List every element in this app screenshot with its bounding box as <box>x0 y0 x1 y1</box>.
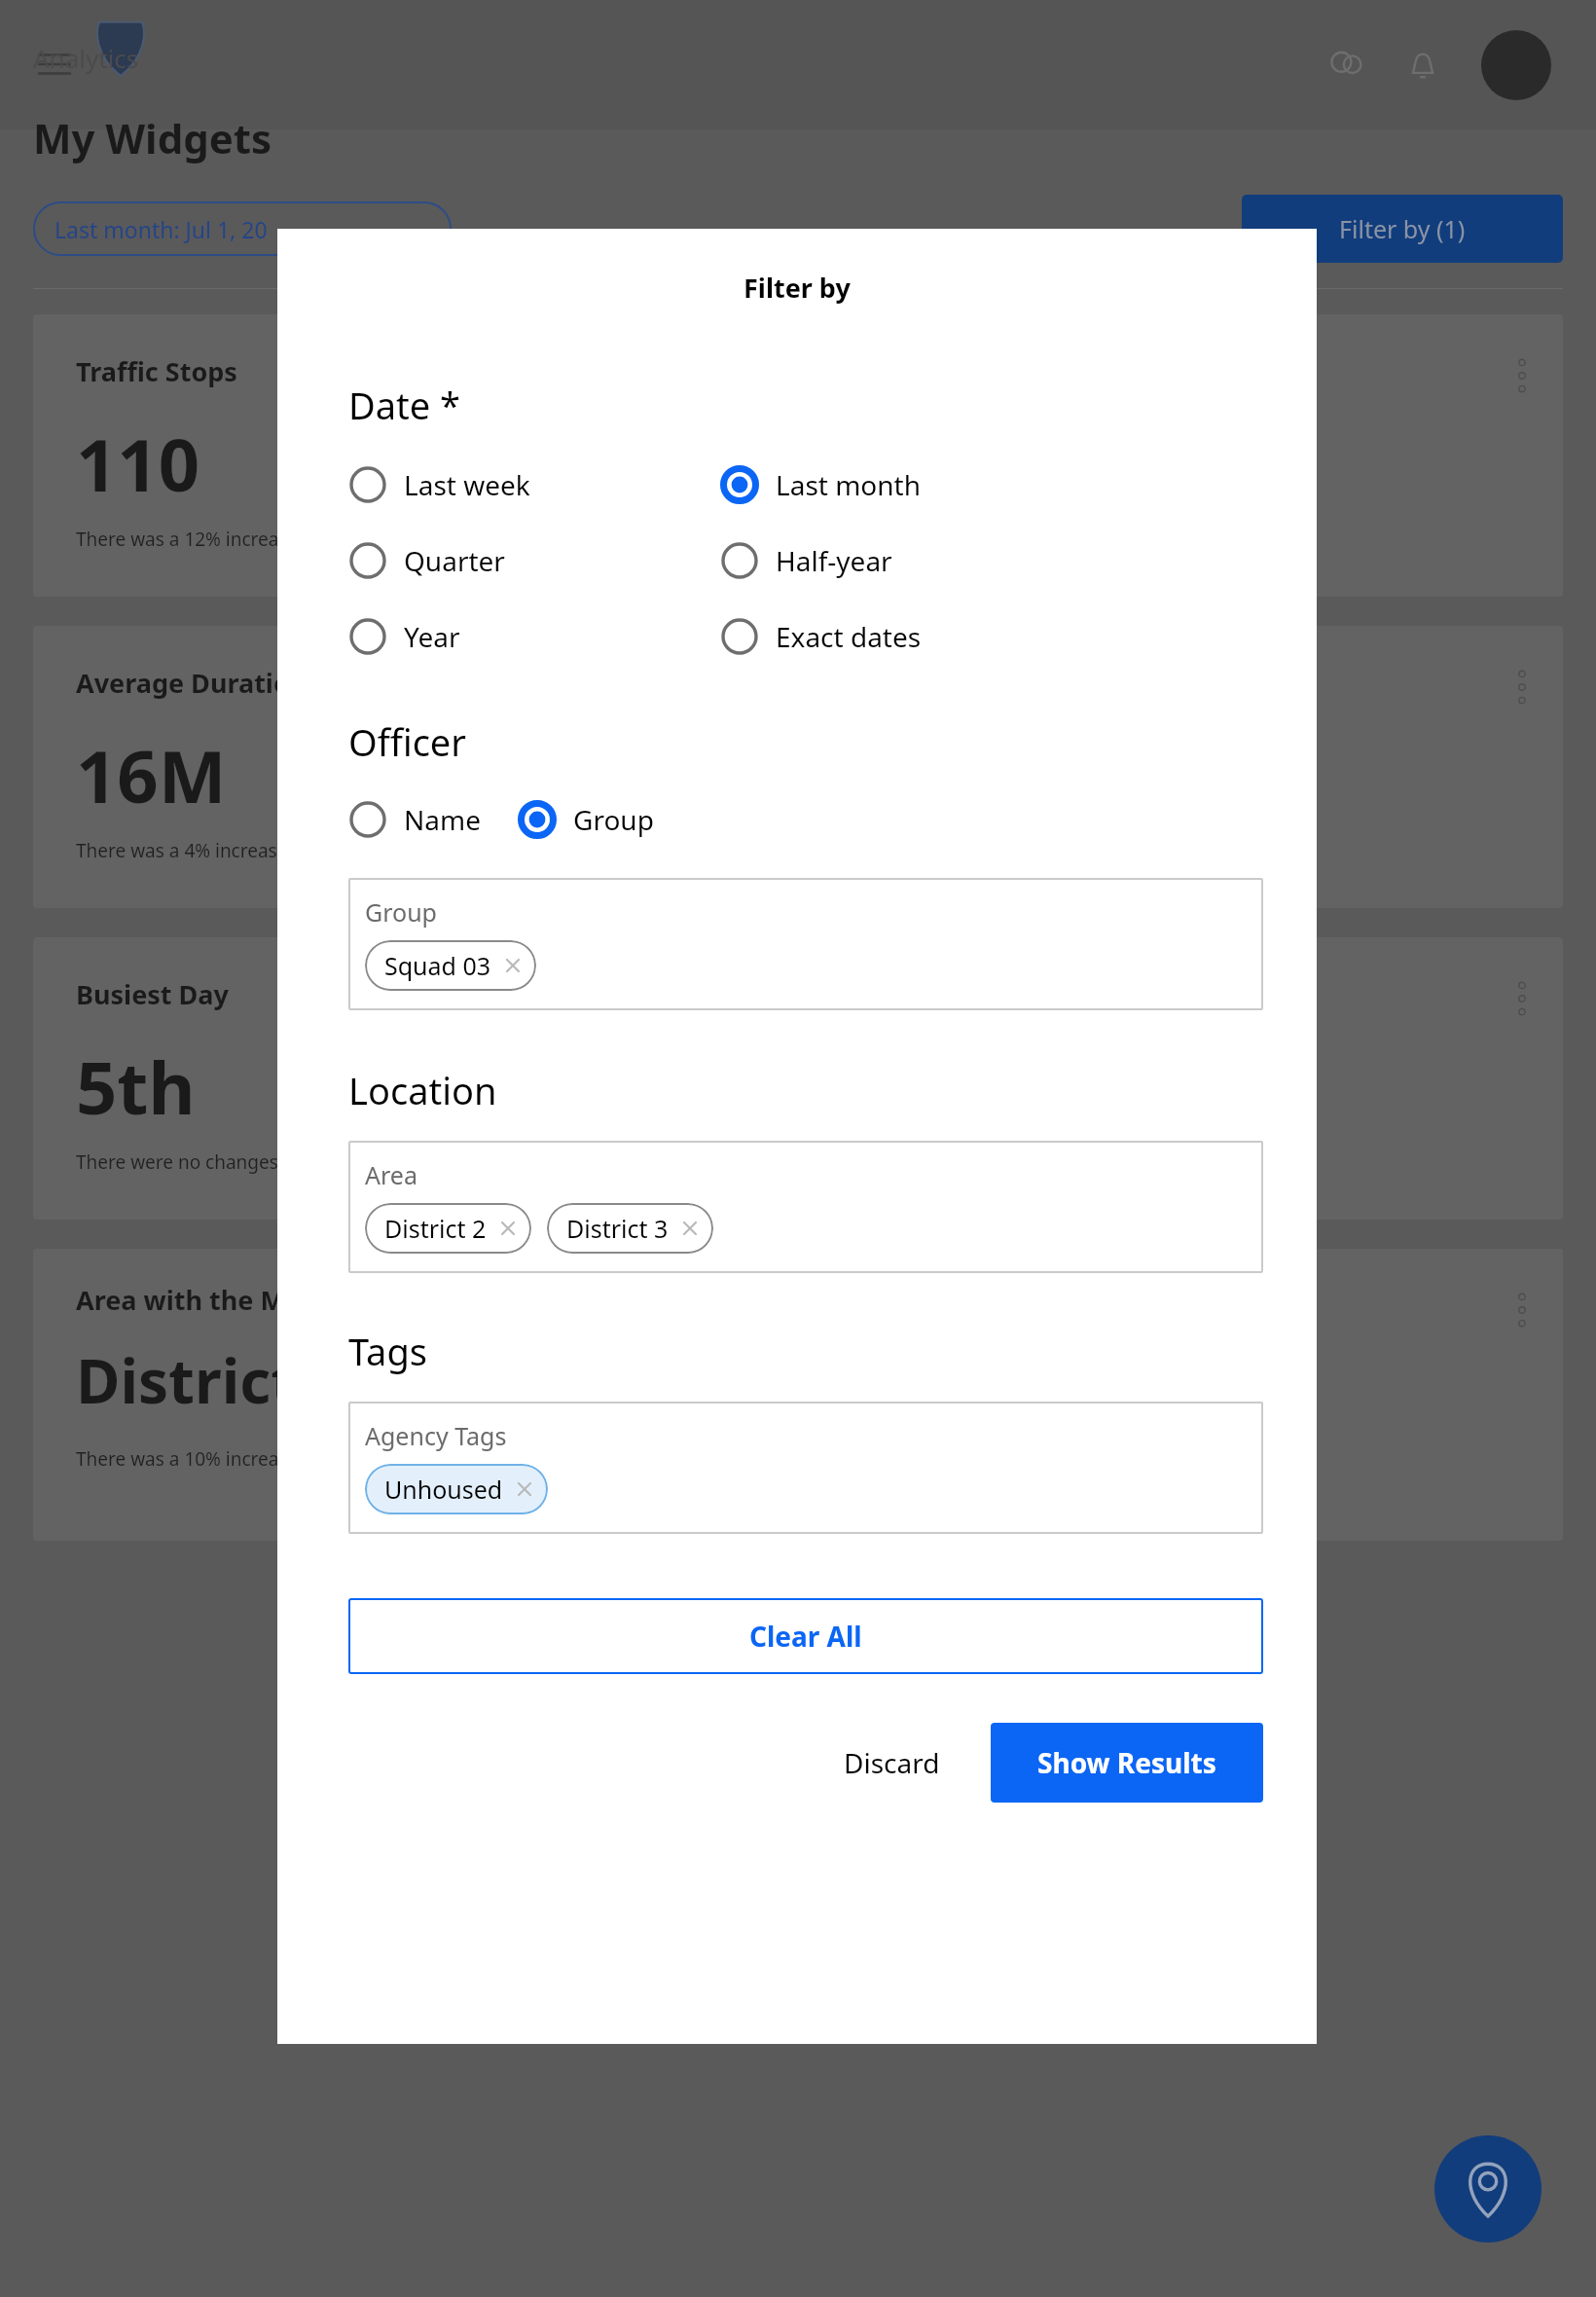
button[interactable]: Group with the Most Contacts <box>812 1249 1563 1541</box>
staticText: There was a 22% increase from the previo… <box>854 1446 1299 1472</box>
staticText: Quarter <box>404 542 505 579</box>
button[interactable]: District 3 <box>547 1203 713 1254</box>
staticText: Exact dates <box>776 618 922 655</box>
staticText: 10% <box>414 1364 464 1397</box>
button[interactable]: Sync <box>1316 34 1378 96</box>
button[interactable]: Last month: Jul 1, 20 <box>33 201 452 256</box>
staticText: Officer <box>348 716 466 767</box>
button[interactable]: Name <box>348 794 481 845</box>
button[interactable]: Filter by (1) <box>1242 195 1563 263</box>
button[interactable]: Unhoused <box>365 1464 548 1514</box>
button[interactable]: Clear All <box>348 1598 1263 1674</box>
button[interactable]: Exact dates <box>720 611 922 662</box>
staticText: 5th <box>76 1038 196 1136</box>
button[interactable]: Profile <box>1481 30 1551 100</box>
staticText: Filter by <box>744 270 851 306</box>
button[interactable]: Last week <box>348 459 530 510</box>
staticText: Location <box>348 1065 497 1115</box>
button[interactable]: District 2 <box>365 1203 531 1254</box>
staticText: 110 <box>76 415 199 513</box>
staticText: District 3 <box>566 1212 669 1245</box>
staticText: Year <box>404 618 460 655</box>
button[interactable]: Show Results <box>991 1723 1263 1803</box>
staticText: Average Duration <box>76 665 308 701</box>
button[interactable]: Traffic Stops <box>33 314 1563 597</box>
button[interactable]: Busiest Day <box>33 937 1563 1220</box>
staticText: There were no changes <box>76 1149 278 1175</box>
button[interactable]: Notifications <box>1392 34 1454 96</box>
staticText: Unhoused <box>384 1473 503 1506</box>
staticText: Squad 03 <box>854 1339 1125 1421</box>
staticText: Agency Tags <box>365 1419 507 1452</box>
staticText: Area with the Most Contacts <box>76 1282 449 1318</box>
button[interactable]: Group <box>348 878 1263 1010</box>
button[interactable]: Squad 03 <box>365 940 536 991</box>
staticText: Last month: Jul 1, 20 <box>54 214 268 244</box>
staticText: Filter by (1) <box>1339 212 1466 245</box>
staticText: Discard <box>844 1744 940 1781</box>
staticText: District 3 <box>76 1339 347 1421</box>
staticText: Busiest Day <box>76 976 229 1012</box>
button[interactable]: Group <box>518 794 654 845</box>
button[interactable]: Year <box>348 611 460 662</box>
button[interactable]: Menu <box>27 37 82 91</box>
button[interactable]: Map <box>1434 2135 1542 2242</box>
staticText: Squad 03 <box>384 949 491 982</box>
button[interactable]: Agency Tags <box>348 1402 1263 1534</box>
staticText: Tags <box>348 1326 427 1376</box>
staticText: Area <box>365 1158 417 1191</box>
staticText: District 2 <box>384 1212 487 1245</box>
button[interactable]: Area <box>348 1141 1263 1273</box>
staticText: There was a 12% increase <box>76 527 299 552</box>
staticText: Traffic Stops <box>76 353 237 389</box>
staticText: There was a 4% increase <box>76 838 288 863</box>
button[interactable]: Quarter <box>348 535 505 586</box>
staticText: Half-year <box>776 542 892 579</box>
button[interactable]: Last month <box>720 459 922 510</box>
button[interactable]: Discard <box>818 1723 965 1803</box>
staticText: Last month <box>776 466 922 503</box>
staticText: Last week <box>404 466 530 503</box>
staticText: There was a 10% increase from the previo… <box>76 1446 521 1472</box>
button[interactable]: Area with the Most Contacts <box>33 1249 784 1541</box>
staticText: Name <box>404 801 481 838</box>
staticText: Show Results <box>1037 1744 1216 1781</box>
button[interactable]: Half-year <box>720 535 892 586</box>
button[interactable]: Agency logo <box>90 16 152 78</box>
staticText: Analytics <box>33 41 139 75</box>
staticText: Date * <box>348 380 461 430</box>
staticText: Clear All <box>749 1618 862 1655</box>
button[interactable]: Average Duration <box>33 626 1563 908</box>
staticText: Group <box>573 801 654 838</box>
staticText: Group <box>365 895 437 929</box>
staticText: 16M <box>76 726 227 824</box>
staticText: My Widgets <box>33 110 272 165</box>
